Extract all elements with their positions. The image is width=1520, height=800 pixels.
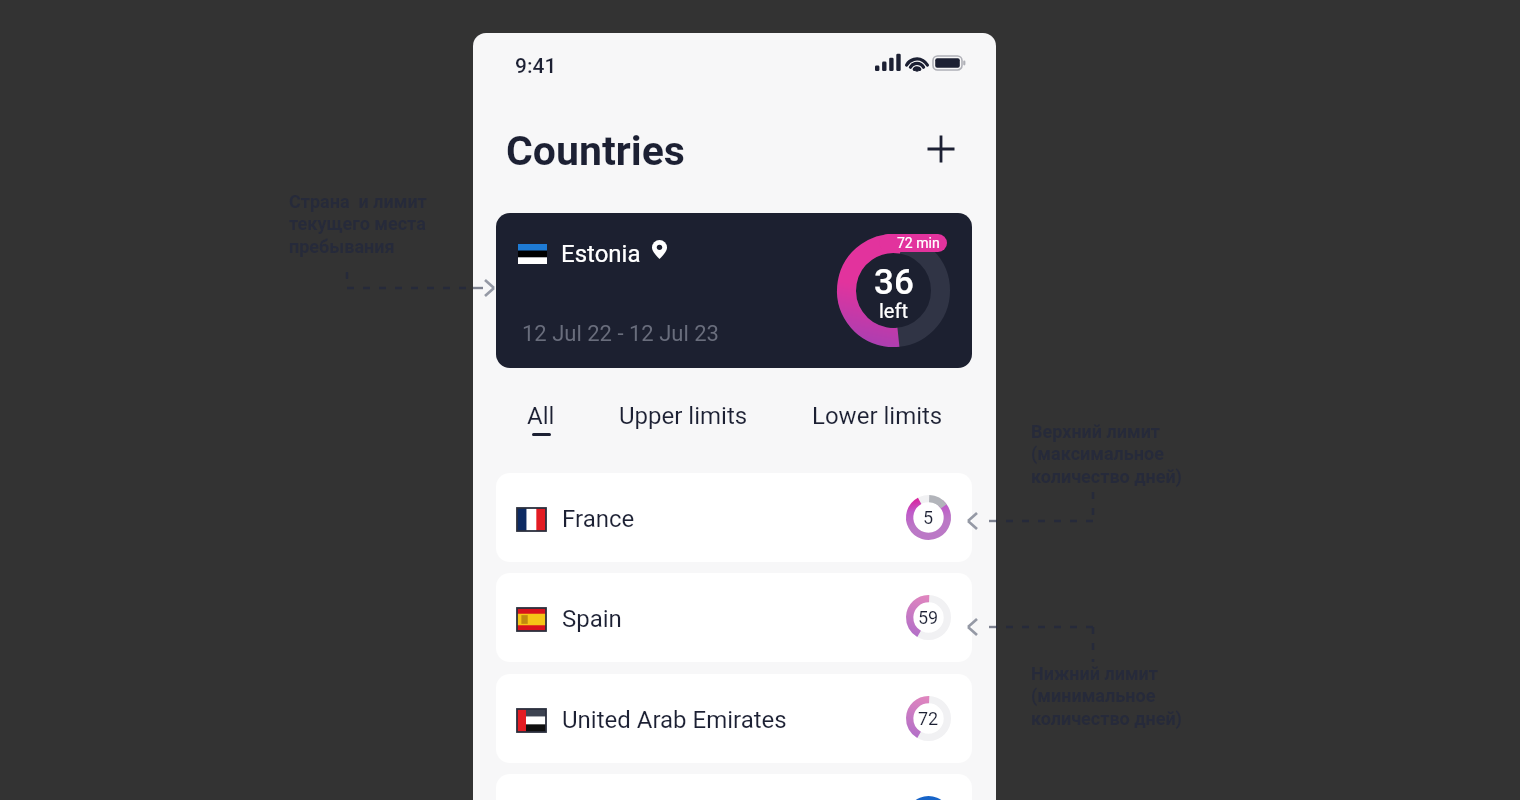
button[interactable]: Lower limits <box>800 396 955 436</box>
staticText: France <box>562 505 635 533</box>
staticText: left <box>879 299 908 322</box>
staticText: 5 <box>923 507 934 528</box>
staticText: 9:41 <box>515 54 557 79</box>
staticText: All <box>527 402 555 430</box>
staticText: 72 min <box>897 235 940 251</box>
other: Current location <box>652 240 667 259</box>
button[interactable]: Estonia <box>496 213 972 368</box>
button[interactable]: Add country <box>919 127 963 171</box>
staticText: United Arab Emirates <box>562 706 787 734</box>
button[interactable]: France <box>496 473 972 562</box>
staticText: Верхний лимит (максимальное количество д… <box>1031 421 1182 488</box>
staticText: Countries <box>506 127 685 175</box>
staticText: Страна и лимит текущего места пребывания <box>289 191 427 258</box>
staticText: 72 <box>918 708 939 729</box>
staticText: Spain <box>562 605 622 633</box>
button[interactable]: Spain <box>496 573 972 662</box>
staticText: 59 <box>918 607 939 628</box>
staticText: Upper limits <box>619 402 748 430</box>
staticText: 36 <box>874 262 914 303</box>
button[interactable]: Upper limits <box>607 396 760 436</box>
staticText: Lower limits <box>812 402 943 430</box>
staticText: Estonia <box>561 240 641 268</box>
staticText: Нижний лимит (минимальное количество дне… <box>1031 663 1182 730</box>
button[interactable] <box>496 774 972 800</box>
button[interactable]: United Arab Emirates <box>496 674 972 763</box>
staticText: 12 Jul 22 - 12 Jul 23 <box>522 321 719 347</box>
button[interactable]: All <box>515 396 567 442</box>
